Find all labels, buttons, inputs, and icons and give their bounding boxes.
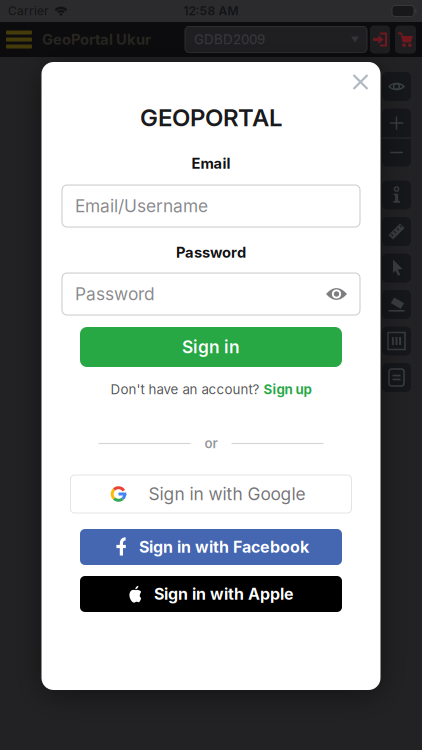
button[interactable]: Parcel ID: [185, 26, 367, 52]
button[interactable]: Email/Username: [62, 185, 360, 227]
button[interactable]: Cart: [395, 25, 416, 53]
button[interactable]: Don't have an account?: [110, 382, 311, 397]
staticText: GEOPORTAL: [140, 103, 282, 132]
button[interactable]: Sign in with Google: [70, 475, 351, 513]
staticText: Don't have an account?: [110, 382, 259, 397]
button[interactable]: Parcels: [382, 326, 411, 355]
staticText: Carrier: [8, 4, 49, 18]
button[interactable]: Measure: [382, 217, 411, 246]
button[interactable]: Toggle layers: [382, 72, 411, 101]
staticText: Password: [75, 284, 155, 304]
staticText: Sign in with Apple: [154, 585, 294, 603]
staticText: GeoPortal Ukur: [42, 31, 151, 48]
button[interactable]: Sign in with Apple: [80, 576, 342, 612]
button[interactable]: Select: [382, 253, 411, 282]
button[interactable]: Erase: [382, 290, 411, 319]
staticText: Email/Username: [75, 196, 208, 216]
button[interactable]: Zoom out: [382, 138, 411, 166]
button[interactable]: Sign in: [80, 327, 342, 367]
button[interactable]: Sign in: [370, 25, 390, 53]
button[interactable]: Legend: [382, 363, 411, 392]
staticText: Sign in: [182, 337, 240, 357]
staticText: Sign in with Facebook: [139, 538, 309, 556]
button[interactable]: Zoom in: [382, 108, 411, 137]
button[interactable]: Password: [62, 273, 360, 315]
staticText: Sign in with Google: [148, 484, 305, 504]
staticText: Sign up: [263, 382, 311, 397]
button[interactable]: Info: [382, 180, 411, 209]
button[interactable]: Menu: [0, 30, 32, 48]
button[interactable]: Show password: [326, 287, 347, 301]
staticText: or: [204, 436, 217, 451]
button[interactable]: Close: [346, 68, 374, 96]
staticText: 12:58 AM: [183, 4, 238, 18]
staticText: Password: [176, 244, 246, 261]
staticText: GDBD2009: [194, 32, 265, 47]
button[interactable]: Sign in with Facebook: [80, 529, 342, 565]
staticText: Email: [191, 155, 230, 172]
